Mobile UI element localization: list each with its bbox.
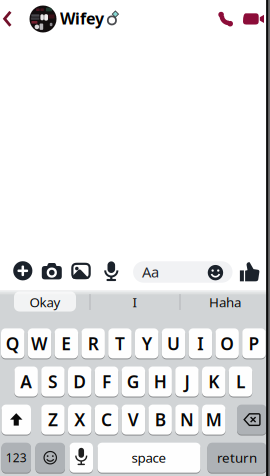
button[interactable]: A: [14, 366, 38, 396]
staticText: space: [131, 449, 166, 466]
staticText: N: [180, 408, 194, 431]
staticText: H: [154, 370, 167, 393]
staticText: W: [31, 332, 48, 355]
button[interactable]: Camera: [41, 262, 63, 280]
button[interactable]: 123: [1, 443, 31, 473]
button[interactable]: Voice message: [104, 261, 118, 281]
button[interactable]: Haha: [182, 289, 268, 315]
button[interactable]: Photos: [71, 262, 91, 279]
staticText: F: [102, 370, 111, 393]
button[interactable]: U: [162, 328, 185, 358]
button[interactable]: H: [148, 366, 172, 396]
button[interactable]: V: [122, 405, 145, 435]
staticText: R: [88, 332, 99, 355]
staticText: I: [132, 293, 137, 311]
staticText: Wifey: [60, 8, 104, 29]
staticText: L: [236, 370, 245, 393]
staticText: Y: [142, 332, 152, 355]
button[interactable]: Y: [135, 328, 158, 358]
button[interactable]: return: [207, 443, 266, 473]
button[interactable]: More actions: [13, 261, 33, 281]
button[interactable]: Delete: [237, 405, 266, 435]
staticText: D: [73, 370, 86, 393]
staticText: P: [248, 332, 259, 355]
button[interactable]: N: [175, 405, 199, 435]
staticText: A: [20, 370, 32, 393]
staticText: return: [217, 449, 257, 466]
button[interactable]: E: [55, 328, 78, 358]
button[interactable]: B: [148, 405, 172, 435]
button[interactable]: G: [122, 366, 145, 396]
staticText: Okay: [29, 293, 60, 311]
button[interactable]: Audio call: [216, 8, 236, 28]
button[interactable]: J: [175, 366, 199, 396]
staticText: Z: [48, 408, 58, 431]
button[interactable]: I: [92, 289, 178, 315]
button[interactable]: F: [95, 366, 118, 396]
staticText: T: [115, 332, 125, 355]
staticText: U: [167, 332, 180, 355]
staticText: Q: [6, 332, 20, 355]
staticText: O: [220, 332, 234, 355]
button[interactable]: I: [189, 328, 212, 358]
staticText: X: [74, 408, 85, 431]
staticText: C: [101, 408, 112, 431]
button[interactable]: O: [215, 328, 239, 358]
button[interactable]: C: [95, 405, 118, 435]
button[interactable]: K: [202, 366, 225, 396]
staticText: I: [197, 332, 203, 355]
staticText: 123: [6, 450, 27, 466]
staticText: V: [128, 408, 139, 431]
button[interactable]: space: [97, 443, 200, 473]
staticText: J: [184, 370, 189, 393]
button[interactable]: Dictate: [69, 443, 93, 473]
button[interactable]: M: [202, 405, 225, 435]
button[interactable]: Z: [41, 405, 65, 435]
button[interactable]: Send a like: [239, 262, 260, 282]
button[interactable]: Back: [2, 10, 14, 27]
button[interactable]: T: [108, 328, 132, 358]
staticText: Aa: [142, 262, 159, 282]
staticText: G: [127, 370, 140, 393]
button[interactable]: W: [28, 328, 51, 358]
button[interactable]: X: [68, 405, 91, 435]
staticText: K: [208, 370, 219, 393]
button[interactable]: Wifey: [28, 4, 118, 34]
button[interactable]: Aa: [133, 261, 233, 283]
button[interactable]: Shift: [1, 405, 31, 435]
button[interactable]: L: [229, 366, 252, 396]
button[interactable]: Q: [1, 328, 24, 358]
staticText: M: [206, 408, 222, 431]
button[interactable]: R: [81, 328, 105, 358]
button[interactable]: Emoji: [35, 443, 65, 473]
button[interactable]: S: [41, 366, 65, 396]
button[interactable]: D: [68, 366, 91, 396]
staticText: S: [48, 370, 58, 393]
staticText: Haha: [209, 293, 241, 311]
button[interactable]: Video call: [242, 10, 266, 26]
button[interactable]: P: [242, 328, 266, 358]
staticText: B: [155, 408, 166, 431]
staticText: E: [61, 332, 71, 355]
button[interactable]: Okay: [2, 289, 88, 315]
